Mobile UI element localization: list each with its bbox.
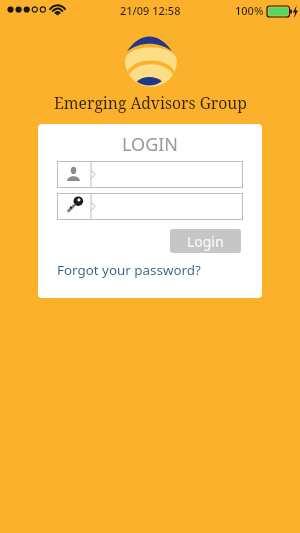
button[interactable]: Forgot your password? bbox=[57, 261, 201, 279]
staticText: Login bbox=[187, 232, 224, 251]
staticText: Emerging Advisors Group bbox=[54, 92, 247, 113]
button[interactable]: Password bbox=[57, 193, 243, 220]
staticText: 100% bbox=[235, 3, 264, 18]
button[interactable]: Login bbox=[170, 229, 241, 253]
staticText: 21/09 12:58 bbox=[120, 3, 181, 18]
button[interactable]: Username bbox=[57, 161, 243, 188]
staticText: LOGIN bbox=[122, 132, 179, 157]
staticText: Forgot your password? bbox=[57, 261, 201, 279]
